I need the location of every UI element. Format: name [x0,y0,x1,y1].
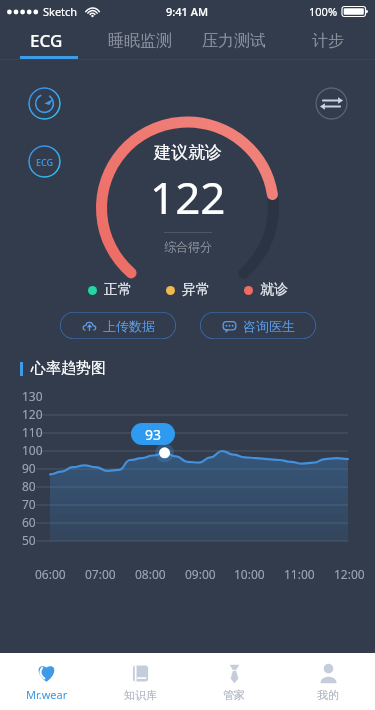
staticText: Mr.wear [26,687,68,702]
staticText: 异常 [182,281,210,299]
staticText: 70 [22,496,36,512]
staticText: 我的 [317,688,339,702]
button[interactable]: ECG [28,145,61,178]
staticText: 综合得分 [164,239,212,254]
staticText: 正常 [104,281,132,299]
staticText: 130 [22,388,43,404]
staticText: 9:41 AM [166,4,209,19]
staticText: 93 [145,425,162,444]
staticText: 建议就诊 [154,142,222,163]
button[interactable]: 咨询医生 [200,312,316,339]
button[interactable]: 睡眠监测 [93,22,187,59]
button[interactable]: 压力测试 [187,22,281,59]
button[interactable]: ECG [0,22,93,59]
button[interactable]: 上传数据 [60,312,176,339]
staticText: 就诊 [260,281,288,299]
staticText: 睡眠监测 [108,31,172,51]
button[interactable]: 知识库 [93,653,187,710]
staticText: Sketch [43,4,78,19]
staticText: 60 [22,514,36,530]
staticText: 90 [22,460,36,476]
button[interactable]: Measure [28,87,61,120]
button[interactable]: 管家 [187,653,281,710]
staticText: 09:00 [185,566,216,582]
staticText: 50 [22,532,36,548]
staticText: 咨询医生 [243,318,295,334]
button[interactable]: 计步 [281,22,375,59]
button[interactable]: Mr.wear [0,653,93,710]
staticText: 管家 [223,688,245,702]
staticText: 07:00 [85,566,116,582]
staticText: 122 [150,167,226,227]
staticText: 100 [22,442,43,458]
staticText: ECG [30,29,63,52]
staticText: 心率趋势图 [31,359,106,378]
staticText: 100% [309,4,338,19]
staticText: 06:00 [35,566,66,582]
staticText: 计步 [312,31,344,51]
button[interactable]: 正常 [88,281,132,299]
staticText: 120 [22,406,43,422]
staticText: 80 [22,478,36,494]
staticText: 10:00 [234,566,265,582]
button[interactable]: Switch [315,87,348,120]
staticText: ECG [36,156,54,168]
button[interactable]: 就诊 [244,281,288,299]
staticText: 12:00 [334,566,365,582]
staticText: 11:00 [284,566,315,582]
button[interactable]: 异常 [166,281,210,299]
staticText: 上传数据 [103,318,155,334]
staticText: 110 [22,424,43,440]
staticText: 08:00 [135,566,166,582]
button[interactable]: 我的 [281,653,375,710]
staticText: 压力测试 [202,31,266,51]
staticText: 知识库 [124,688,157,702]
